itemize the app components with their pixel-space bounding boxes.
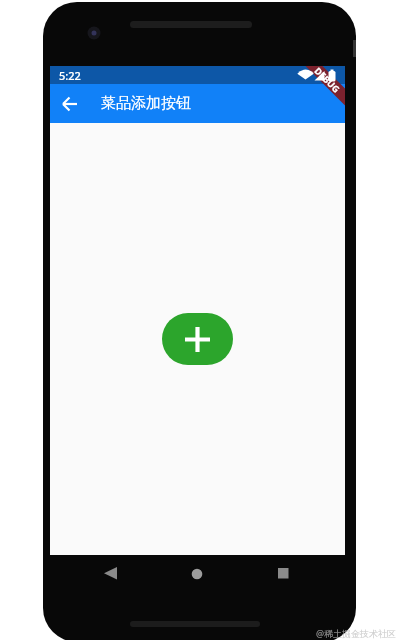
staticText: 菜品添加按钮 — [101, 94, 191, 113]
staticText: DEBUG — [312, 66, 343, 95]
button[interactable] — [162, 313, 233, 365]
staticText: @稀土掘金技术社区 — [316, 627, 397, 639]
staticText: 5:22 — [59, 68, 81, 83]
button[interactable] — [61, 95, 79, 113]
